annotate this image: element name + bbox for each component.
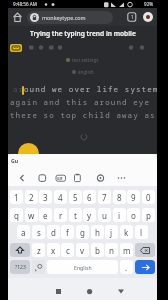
staticText: w — [28, 210, 35, 221]
button[interactable] — [135, 260, 155, 274]
button[interactable]: u — [98, 208, 111, 222]
staticText: 8 — [117, 192, 122, 203]
staticText: u — [102, 210, 107, 221]
button[interactable]: c — [61, 243, 74, 257]
button[interactable]: . — [120, 260, 133, 274]
staticText: 1 — [14, 192, 19, 203]
button[interactable]: k — [120, 225, 133, 239]
staticText: n — [109, 245, 114, 256]
staticText: f — [66, 227, 69, 238]
button[interactable]: s — [32, 225, 45, 239]
staticText: test settings — [72, 57, 99, 63]
staticText: x — [51, 245, 56, 256]
staticText: English — [74, 264, 92, 271]
button[interactable] — [10, 44, 22, 52]
button[interactable]: x — [47, 243, 60, 257]
button[interactable]: 5 — [69, 190, 82, 204]
staticText: Trying the typing trend in mobile — [30, 29, 136, 38]
button[interactable]: w — [25, 208, 38, 222]
staticText: GIF — [57, 176, 63, 181]
button[interactable]: y — [83, 208, 96, 222]
button[interactable]: i — [113, 208, 126, 222]
button[interactable]: q — [10, 208, 23, 222]
staticText: 1 — [131, 14, 134, 20]
button[interactable]: d — [47, 225, 60, 239]
button[interactable]: p — [142, 208, 155, 222]
staticText: t — [74, 210, 77, 221]
button[interactable]: english — [8, 69, 157, 75]
button[interactable]: h — [91, 225, 104, 239]
button[interactable] — [83, 285, 95, 297]
staticText: v — [80, 245, 85, 256]
staticText: 4 — [58, 192, 63, 203]
staticText: j — [110, 227, 113, 238]
staticText: i — [118, 210, 121, 221]
button[interactable]: 1 — [127, 12, 137, 22]
staticText: 0 — [146, 192, 151, 203]
staticText: english — [78, 69, 94, 75]
button[interactable]: e — [39, 208, 52, 222]
button[interactable]: ?123 — [10, 260, 30, 274]
staticText: q — [14, 210, 19, 221]
button[interactable]: l — [135, 225, 148, 239]
staticText: r — [59, 210, 63, 221]
staticText: e — [43, 210, 48, 221]
button[interactable]: 6 — [83, 190, 96, 204]
button[interactable]: 2 — [25, 190, 38, 204]
staticText: again and this around eye — [10, 97, 150, 107]
staticText: Gu — [11, 157, 19, 164]
button[interactable]: test settings — [8, 57, 157, 63]
button[interactable]: t — [69, 208, 82, 222]
button[interactable]: o — [127, 208, 140, 222]
staticText: 9 — [131, 192, 136, 203]
staticText: b — [95, 245, 100, 256]
button[interactable]: 4 — [54, 190, 67, 204]
button[interactable] — [115, 285, 127, 297]
staticText: 7 — [102, 192, 107, 203]
button[interactable]: monkeytype.com — [27, 11, 113, 24]
button[interactable]: r — [54, 208, 67, 222]
staticText: s — [37, 227, 41, 238]
staticText: l — [140, 227, 143, 238]
staticText: d — [51, 227, 56, 238]
button[interactable]: 0 — [142, 190, 155, 204]
staticText: a — [21, 227, 26, 238]
staticText: g — [80, 227, 85, 238]
button[interactable]: 1 — [10, 190, 23, 204]
button[interactable]: v — [76, 243, 89, 257]
button[interactable]: 7 — [98, 190, 111, 204]
staticText: ar — [13, 84, 25, 94]
staticText: h — [95, 227, 100, 238]
button[interactable]: 8 — [113, 190, 126, 204]
staticText: p — [146, 210, 151, 221]
button[interactable]: b — [91, 243, 104, 257]
button[interactable]: z — [32, 243, 45, 257]
button[interactable] — [135, 243, 155, 257]
staticText: m — [123, 245, 131, 256]
staticText: 3 — [43, 192, 48, 203]
button[interactable]: a — [17, 225, 30, 239]
button[interactable]: 3 — [39, 190, 52, 204]
staticText: ound we over life system — [24, 84, 159, 94]
button[interactable] — [10, 243, 30, 257]
button[interactable]: m — [120, 243, 133, 257]
staticText: there so top child away as — [10, 110, 156, 120]
staticText: . — [125, 262, 128, 273]
staticText: monkeytype.com — [42, 14, 86, 21]
staticText: 9:48:56 AM — [13, 1, 37, 7]
staticText: 6 — [87, 192, 92, 203]
staticText: 92% — [144, 1, 154, 7]
staticText: k — [124, 227, 129, 238]
staticText: z — [37, 245, 41, 256]
button[interactable] — [143, 12, 153, 22]
button[interactable]: j — [105, 225, 118, 239]
button[interactable] — [32, 260, 45, 274]
staticText: ?123 — [15, 264, 26, 271]
button[interactable]: f — [61, 225, 74, 239]
button[interactable]: 9 — [127, 190, 140, 204]
button[interactable]: English — [47, 260, 118, 274]
staticText: 2 — [29, 192, 34, 203]
button[interactable] — [52, 285, 64, 297]
button[interactable]: g — [76, 225, 89, 239]
button[interactable]: n — [105, 243, 118, 257]
